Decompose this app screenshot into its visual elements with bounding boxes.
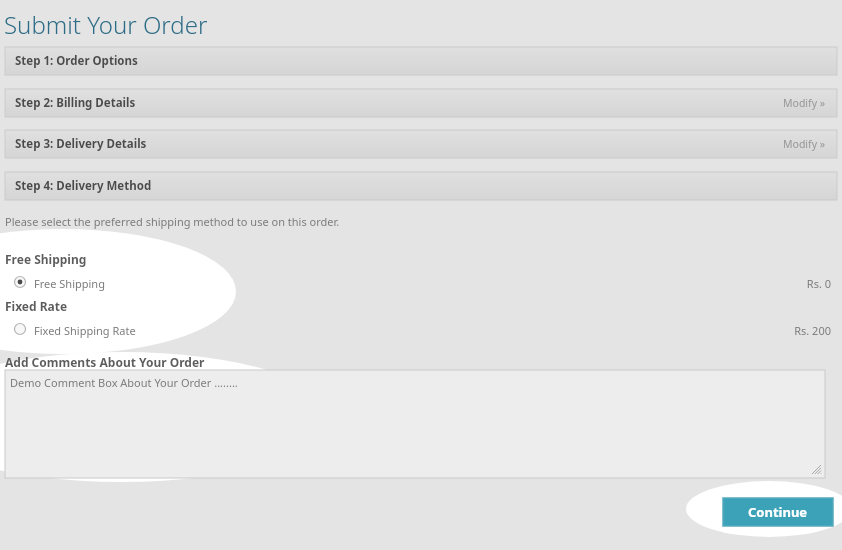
staticText: Step 1: Order Options	[15, 53, 138, 69]
button[interactable]: Free Shipping	[5, 272, 837, 294]
staticText: Fixed Rate	[5, 298, 68, 314]
button[interactable]: Step 4: Delivery Method	[5, 172, 837, 200]
button[interactable]: Option	[14, 323, 26, 335]
button[interactable]: Modify »	[783, 96, 826, 110]
staticText: Fixed Shipping Rate	[34, 323, 136, 338]
button[interactable]: Demo Comment Box About Your Order ......…	[5, 370, 825, 478]
button[interactable]: Step 3: Delivery Details	[5, 130, 837, 158]
staticText: Continue	[748, 503, 808, 521]
button[interactable]: Step 1: Order Options	[5, 47, 837, 75]
staticText: Step 4: Delivery Method	[15, 178, 152, 194]
staticText: Please select the preferred shipping met…	[5, 214, 340, 229]
staticText: Free Shipping	[5, 251, 87, 267]
staticText: Rs. 200	[794, 323, 831, 338]
staticText: Step 2: Billing Details	[15, 95, 136, 111]
button[interactable]: Selected option	[14, 276, 26, 288]
button[interactable]: Step 2: Billing Details	[5, 89, 837, 117]
button[interactable]: Modify »	[783, 137, 826, 151]
button[interactable]: Fixed Shipping Rate	[5, 319, 837, 341]
staticText: Step 3: Delivery Details	[15, 136, 147, 152]
staticText: Add Comments About Your Order	[5, 354, 205, 370]
staticText: Rs. 0	[806, 276, 831, 291]
staticText: Submit Your Order	[4, 8, 208, 41]
staticText: Demo Comment Box About Your Order ......…	[10, 375, 238, 390]
staticText: Free Shipping	[34, 276, 105, 291]
button[interactable]: Continue	[723, 498, 833, 526]
